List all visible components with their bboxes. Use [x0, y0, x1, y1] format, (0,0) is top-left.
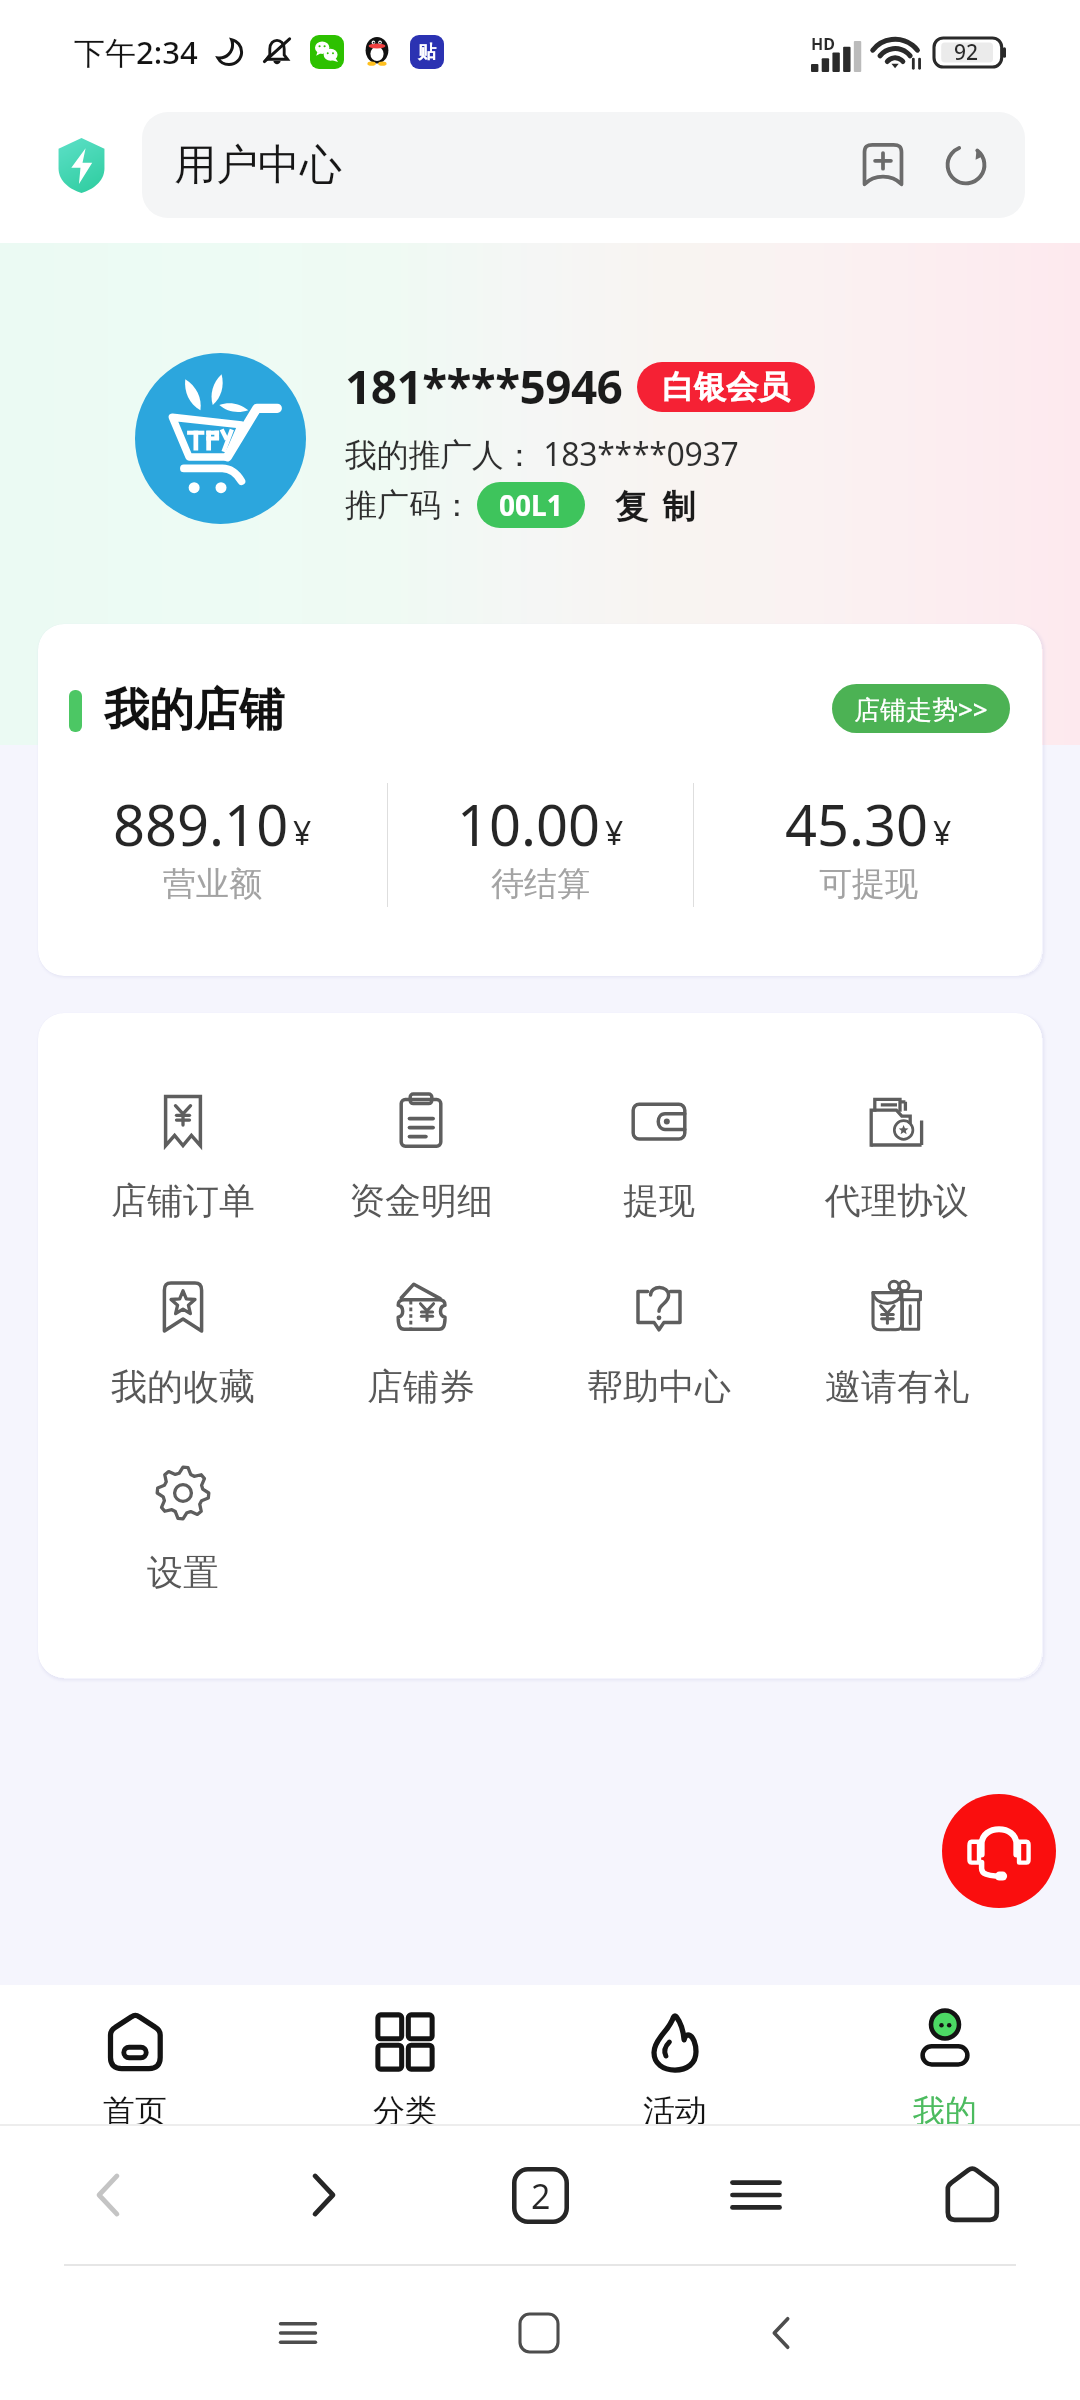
- button[interactable]: 店铺券: [302, 1251, 540, 1437]
- staticText: 营业额: [163, 863, 262, 905]
- button[interactable]: 菜单: [648, 2126, 864, 2264]
- staticText: 提现: [623, 1178, 695, 1223]
- staticText: 白银会员: [662, 367, 790, 407]
- staticText: 45.30: [785, 786, 929, 862]
- staticText: HD: [811, 33, 835, 55]
- button[interactable]: 主页: [864, 2126, 1080, 2264]
- button[interactable]: 提现: [540, 1065, 778, 1251]
- button[interactable]: 45.30: [694, 786, 1042, 905]
- button[interactable]: 头像: [135, 353, 306, 524]
- button[interactable]: 前进: [216, 2126, 432, 2264]
- staticText: 889.10: [113, 786, 289, 862]
- button[interactable]: 在线客服: [942, 1794, 1056, 1908]
- staticText: 我的: [913, 2091, 977, 2124]
- staticText: 分类: [373, 2091, 437, 2124]
- button[interactable]: 复 制: [615, 483, 699, 528]
- staticText: 我的收藏: [111, 1364, 255, 1409]
- staticText: 复 制: [615, 483, 699, 528]
- staticText: 设置: [147, 1550, 219, 1595]
- button[interactable]: 返回: [660, 2266, 902, 2400]
- staticText: 首页: [103, 2091, 167, 2124]
- staticText: 我的店铺: [104, 682, 832, 739]
- staticText: 邀请有礼: [825, 1364, 969, 1409]
- button[interactable]: 主屏幕: [418, 2266, 660, 2400]
- button[interactable]: 活动: [540, 1985, 810, 2124]
- button[interactable]: 邀请有礼: [778, 1251, 1016, 1437]
- button[interactable]: 刷新: [943, 142, 989, 188]
- staticText: 活动: [643, 2091, 707, 2124]
- button[interactable]: 分类: [270, 1985, 540, 2124]
- staticText: 2: [531, 2173, 551, 2219]
- staticText: 帮助中心: [587, 1364, 731, 1409]
- button[interactable]: 用户中心: [142, 112, 1025, 218]
- button[interactable]: 添加书签: [861, 142, 905, 188]
- staticText: 贴: [418, 41, 436, 64]
- button[interactable]: 店铺走势>>: [832, 684, 1010, 733]
- button[interactable]: 10.00: [388, 786, 693, 905]
- button[interactable]: 标签页: [432, 2126, 648, 2264]
- staticText: 店铺走势>>: [854, 691, 988, 727]
- button[interactable]: 首页: [0, 1985, 270, 2124]
- staticText: 181****5946: [345, 355, 623, 418]
- staticText: ¥: [293, 811, 312, 855]
- button[interactable]: 我的收藏: [64, 1251, 302, 1437]
- staticText: 可提现: [819, 863, 918, 905]
- staticText: 用户中心: [174, 139, 861, 192]
- staticText: 代理协议: [825, 1178, 969, 1223]
- staticText: ¥: [933, 811, 952, 855]
- staticText: 待结算: [491, 863, 590, 905]
- button[interactable]: 资金明细: [302, 1065, 540, 1251]
- staticText: 店铺券: [367, 1364, 475, 1409]
- staticText: 10.00: [457, 786, 601, 862]
- staticText: 我的推广人： 183****0937: [345, 432, 739, 476]
- button[interactable]: 店铺订单: [64, 1065, 302, 1251]
- button[interactable]: 代理协议: [778, 1065, 1016, 1251]
- button[interactable]: 最近任务: [177, 2266, 418, 2400]
- staticText: 00L1: [499, 486, 563, 524]
- button[interactable]: 889.10: [38, 786, 387, 905]
- button[interactable]: 后退: [0, 2126, 216, 2264]
- button[interactable]: 我的: [810, 1985, 1080, 2124]
- button[interactable]: 帮助中心: [540, 1251, 778, 1437]
- staticText: ¥: [605, 811, 624, 855]
- staticText: 推广码：: [345, 485, 473, 525]
- staticText: 92: [954, 38, 979, 67]
- button[interactable]: 安全: [56, 137, 107, 193]
- staticText: 资金明细: [349, 1178, 493, 1223]
- staticText: 店铺订单: [111, 1178, 255, 1223]
- button[interactable]: 白银会员: [637, 362, 815, 412]
- staticText: 下午2:34: [74, 31, 198, 73]
- button[interactable]: 设置: [64, 1437, 302, 1623]
